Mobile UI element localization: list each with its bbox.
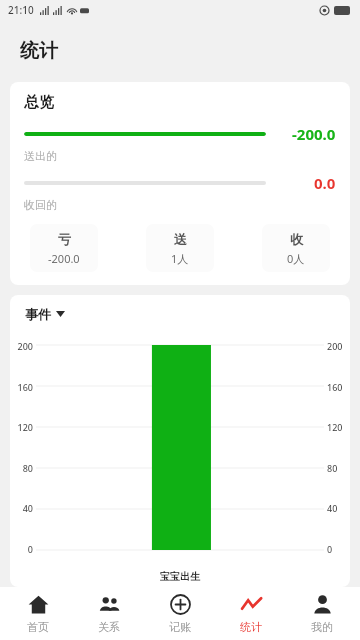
staticText: 200: [327, 340, 343, 352]
staticText: 160: [327, 381, 343, 393]
staticText: 200: [17, 340, 33, 352]
button[interactable]: 收: [262, 224, 330, 272]
staticText: 记账: [169, 620, 191, 634]
staticText: 40: [22, 502, 33, 514]
button[interactable]: 记账: [147, 587, 213, 640]
button[interactable]: 送: [146, 224, 214, 272]
staticText: 0: [327, 543, 333, 555]
staticText: 我的: [311, 620, 333, 634]
staticText: 统计: [240, 620, 262, 634]
staticText: 统计: [20, 39, 58, 63]
button[interactable]: 统计: [218, 587, 284, 640]
other: 我的: [312, 594, 333, 615]
staticText: 收: [290, 231, 303, 247]
staticText: 1人: [171, 251, 189, 266]
staticText: 80: [327, 462, 338, 474]
staticText: 0.0: [314, 173, 336, 193]
button[interactable]: 关系: [76, 587, 142, 640]
staticText: 120: [327, 421, 343, 433]
staticText: 送出的: [24, 149, 57, 163]
staticText: 总览: [24, 93, 54, 112]
button[interactable]: 我的: [289, 587, 355, 640]
staticText: 21:10: [8, 3, 34, 17]
staticText: 40: [327, 502, 338, 514]
staticText: -200.0: [48, 251, 80, 266]
staticText: 首页: [27, 620, 49, 634]
other: 记账: [170, 594, 191, 615]
button[interactable]: 亏: [30, 224, 98, 272]
staticText: 120: [17, 421, 33, 433]
staticText: 亏: [58, 231, 71, 247]
button[interactable]: 首页: [5, 587, 71, 640]
button[interactable]: 事件: [22, 304, 68, 324]
staticText: 80: [22, 462, 33, 474]
staticText: 收回的: [24, 198, 57, 212]
staticText: 关系: [98, 620, 120, 634]
staticText: 0人: [287, 251, 305, 266]
staticText: 事件: [25, 306, 51, 322]
staticText: 160: [17, 381, 33, 393]
other: 首页: [28, 594, 49, 615]
other: 关系: [99, 594, 120, 615]
other: 统计: [241, 594, 262, 615]
staticText: 0: [27, 543, 33, 555]
staticText: -200.0: [292, 124, 336, 144]
staticText: 送: [174, 231, 187, 247]
staticText: 宝宝出生: [160, 570, 200, 583]
